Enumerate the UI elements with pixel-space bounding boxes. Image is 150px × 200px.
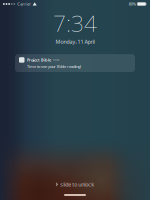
staticText: 7:34 [53,8,97,38]
staticText: slide to unlock [60,181,94,188]
button[interactable]: Project Bible [15,54,135,72]
staticText: Project Bible [27,57,51,62]
staticText: 80% [129,1,136,7]
staticText: Monday, 11 April [55,38,94,45]
staticText: now [53,58,59,62]
staticText: Time to see your Bible reading! [27,64,81,69]
staticText: Carrier [17,1,31,7]
